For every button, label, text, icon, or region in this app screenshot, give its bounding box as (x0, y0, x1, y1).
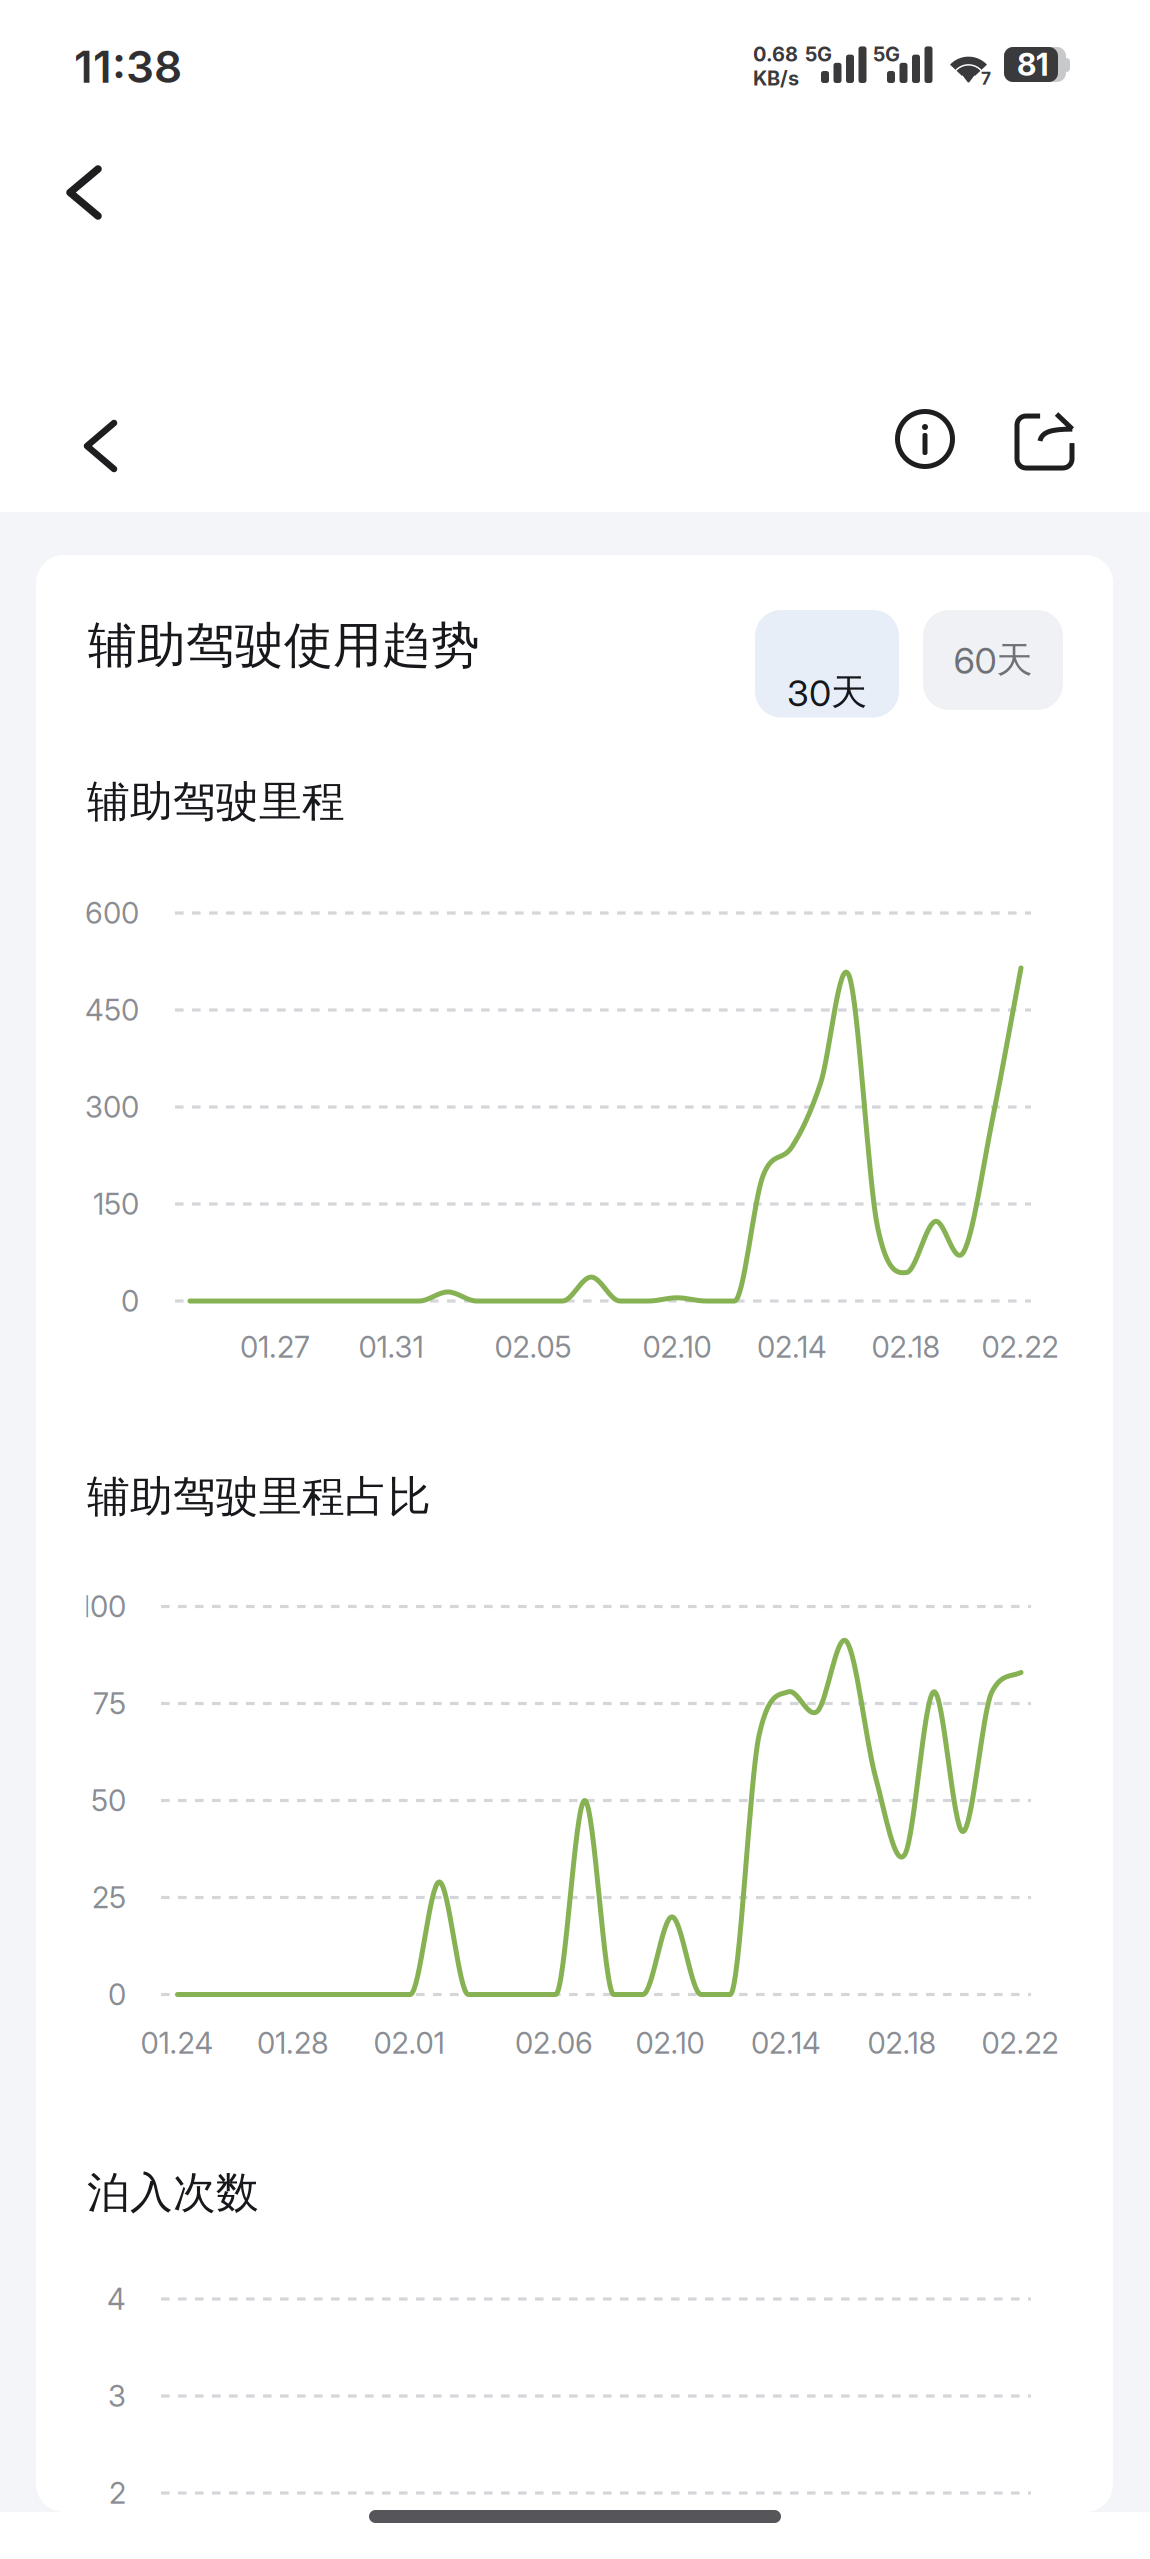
staticText: 7 (981, 68, 991, 89)
button[interactable]: Back (44, 143, 124, 242)
staticText: 泊入次数 (87, 2166, 259, 2220)
staticText: 02.18 (867, 2025, 936, 2061)
staticText: 辅助驾驶里程占比 (87, 1470, 431, 1524)
button[interactable]: 60天 (923, 610, 1063, 710)
staticText: 150 (93, 1186, 139, 1222)
staticText: 0 (121, 1283, 139, 1319)
staticText: 300 (85, 1089, 139, 1125)
staticText: 02.01 (373, 2025, 444, 2061)
staticText: 11:38 (74, 40, 182, 93)
staticText: 02.22 (981, 1329, 1058, 1365)
staticText: 450 (85, 992, 139, 1028)
staticText: 0 (108, 1977, 126, 2012)
staticText: 30天 (787, 670, 867, 715)
staticText: 60天 (953, 637, 1032, 683)
staticText: 辅助驾驶里程 (87, 775, 345, 829)
staticText: KB/s (753, 66, 799, 90)
staticText: 3 (108, 2378, 126, 2414)
staticText: 81 (1017, 46, 1049, 83)
staticText: 5G (873, 42, 900, 66)
staticText: 75 (93, 1686, 126, 1721)
staticText: 02.10 (642, 1329, 711, 1365)
staticText: 01.31 (358, 1329, 423, 1365)
staticText: 02.14 (751, 2025, 821, 2061)
staticText: 50 (91, 1783, 126, 1818)
staticText: 02.18 (871, 1329, 940, 1365)
staticText: 600 (85, 895, 139, 931)
staticText: 01.24 (140, 2025, 213, 2061)
staticText: 02.14 (757, 1329, 827, 1365)
staticText: 100 (79, 1589, 126, 1624)
staticText: 辅助驾驶使用趋势 (88, 615, 480, 676)
staticText: 0.68 (753, 42, 798, 66)
staticText: 01.28 (257, 2025, 329, 2061)
staticText: 25 (92, 1880, 126, 1915)
button[interactable]: 30天 (755, 610, 899, 717)
staticText: 02.10 (635, 2025, 704, 2061)
staticText: 02.05 (494, 1329, 571, 1365)
staticText: 2 (109, 2475, 126, 2511)
button[interactable]: Share (999, 396, 1091, 486)
button[interactable]: Information (877, 391, 973, 487)
staticText: 01.27 (240, 1329, 310, 1365)
staticText: 02.06 (515, 2025, 593, 2061)
staticText: 02.22 (981, 2025, 1058, 2061)
button[interactable]: Back (61, 397, 140, 495)
staticText: 4 (107, 2281, 126, 2317)
staticText: 5G (805, 42, 832, 66)
